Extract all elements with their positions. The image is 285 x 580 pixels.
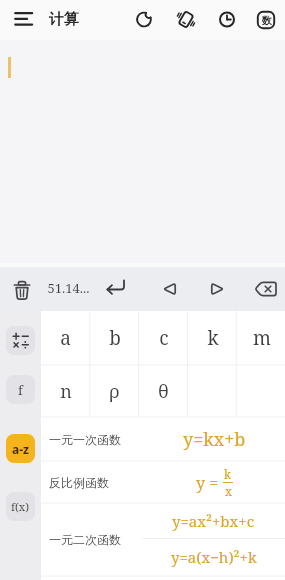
- button[interactable]: [250, 276, 280, 302]
- button[interactable]: [6, 326, 35, 355]
- staticText: 一元一次函数: [49, 432, 121, 447]
- button[interactable]: n: [41, 365, 90, 417]
- button[interactable]: f(x): [6, 492, 35, 521]
- staticText: y =: [196, 472, 223, 494]
- staticText: y=ax²+bx+c: [172, 511, 255, 531]
- staticText: a: [60, 325, 71, 351]
- staticText: 反比例函数: [49, 475, 109, 490]
- button[interactable]: m: [237, 311, 285, 365]
- button[interactable]: [8, 5, 38, 33]
- button[interactable]: b: [90, 311, 139, 365]
- staticText: 一元二次函数: [49, 532, 121, 547]
- button[interactable]: [215, 7, 239, 32]
- button[interactable]: f: [6, 375, 35, 404]
- staticText: b: [109, 325, 121, 351]
- button[interactable]: [156, 276, 182, 302]
- staticText: k: [224, 466, 232, 482]
- staticText: 计算: [49, 10, 79, 29]
- staticText: 数: [262, 14, 272, 27]
- staticText: n: [60, 379, 72, 404]
- staticText: θ: [158, 379, 169, 404]
- staticText: 51.14...: [47, 279, 90, 297]
- button[interactable]: ρ: [90, 365, 139, 417]
- staticText: c: [159, 325, 169, 351]
- staticText: x: [225, 483, 232, 499]
- button[interactable]: 一元二次函数: [41, 503, 285, 576]
- button[interactable]: [102, 276, 130, 302]
- staticText: y=kx+b: [183, 427, 246, 452]
- staticText: k: [207, 325, 219, 351]
- button[interactable]: [174, 7, 198, 32]
- button[interactable]: c: [139, 311, 188, 365]
- staticText: f: [18, 381, 23, 399]
- staticText: f(x): [11, 499, 30, 514]
- button[interactable]: [204, 276, 230, 302]
- button[interactable]: a: [41, 311, 90, 365]
- staticText: m: [253, 325, 271, 351]
- staticText: a-z: [12, 441, 29, 457]
- button[interactable]: 一元一次函数: [41, 417, 285, 461]
- staticText: ρ: [109, 379, 120, 404]
- button[interactable]: [8, 276, 36, 302]
- button[interactable]: k: [188, 311, 237, 365]
- button[interactable]: a-z: [6, 434, 35, 463]
- staticText: y=a(x−h)²+k: [171, 547, 257, 567]
- button[interactable]: 反比例函数: [41, 461, 285, 503]
- button[interactable]: 数: [254, 7, 279, 33]
- button[interactable]: θ: [139, 365, 188, 417]
- button[interactable]: [132, 7, 156, 32]
